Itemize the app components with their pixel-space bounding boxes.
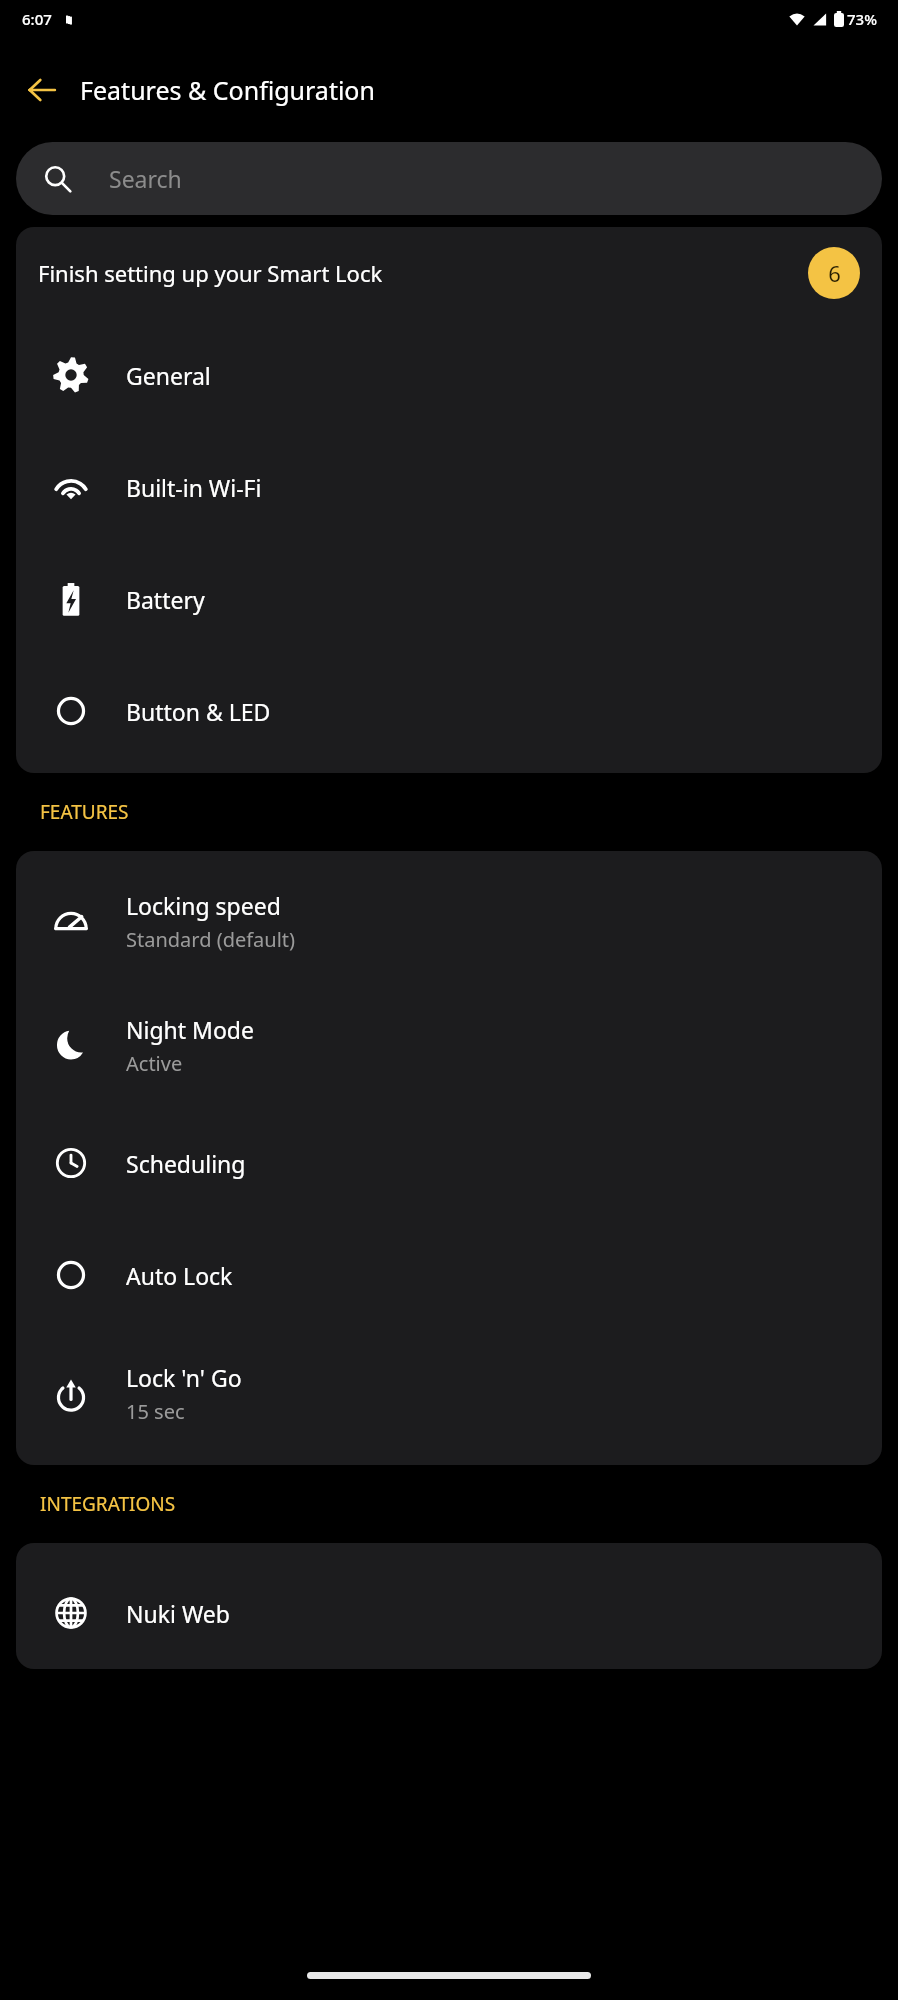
staticText: Features & Configuration — [80, 73, 375, 107]
button[interactable]: Lock 'n' Go — [16, 1331, 882, 1455]
staticText: Auto Lock — [126, 1260, 233, 1291]
button[interactable]: Back — [14, 62, 70, 118]
staticText: Night Mode — [126, 1014, 254, 1045]
button[interactable]: Night Mode — [16, 983, 882, 1107]
staticText: General — [126, 360, 211, 391]
staticText: Standard (default) — [126, 926, 296, 953]
button[interactable]: Finish setting up your Smart Lock — [16, 227, 882, 319]
button[interactable]: Search — [16, 142, 882, 215]
staticText: Scheduling — [126, 1148, 246, 1179]
button[interactable]: Button & LED — [16, 655, 882, 767]
button[interactable]: Scheduling — [16, 1107, 882, 1219]
staticText: Lock 'n' Go — [126, 1362, 242, 1393]
button[interactable]: Auto Lock — [16, 1219, 882, 1331]
staticText: 73% — [847, 9, 877, 29]
staticText: Finish setting up your Smart Lock — [38, 258, 808, 288]
staticText: Built-in Wi-Fi — [126, 472, 262, 503]
button[interactable]: Battery — [16, 543, 882, 655]
button[interactable]: Nuki Web — [16, 1557, 882, 1669]
staticText: Button & LED — [126, 696, 271, 727]
button[interactable]: General — [16, 319, 882, 431]
staticText: Nuki Web — [126, 1598, 230, 1629]
staticText: FEATURES — [40, 799, 129, 825]
staticText: 6 — [828, 258, 841, 288]
staticText: Search — [109, 163, 182, 194]
staticText: 15 sec — [126, 1398, 185, 1425]
button[interactable]: Built-in Wi-Fi — [16, 431, 882, 543]
staticText: Locking speed — [126, 890, 281, 921]
staticText: Battery — [126, 584, 205, 615]
staticText: 6:07 — [22, 9, 52, 29]
staticText: INTEGRATIONS — [40, 1491, 176, 1517]
button[interactable]: Locking speed — [16, 859, 882, 983]
staticText: Active — [126, 1050, 183, 1077]
